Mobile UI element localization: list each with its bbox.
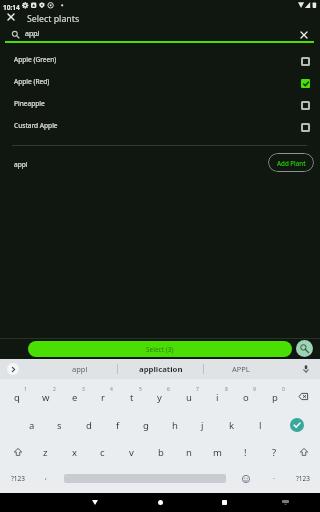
button[interactable]: Backspace xyxy=(288,383,318,410)
button[interactable]: More suggestions xyxy=(2,359,24,379)
button[interactable]: j xyxy=(188,411,217,438)
button[interactable]: Emoji xyxy=(231,465,260,492)
button[interactable]: r xyxy=(88,383,117,410)
staticText: 10:14 xyxy=(3,3,20,12)
button[interactable]: l xyxy=(246,411,275,438)
button[interactable]: Hide keyboard xyxy=(275,493,295,512)
button[interactable]: appl xyxy=(34,359,126,379)
staticText: Apple (Red) xyxy=(14,77,50,86)
button[interactable]: i xyxy=(203,383,232,410)
staticText: y xyxy=(157,391,162,404)
staticText: . xyxy=(273,472,275,482)
staticText: Pineapple xyxy=(14,99,45,108)
button[interactable]: Apple (Red) xyxy=(0,70,320,92)
button[interactable]: u xyxy=(174,383,203,410)
button[interactable]: Select (3) xyxy=(28,341,292,357)
button[interactable]: Shift xyxy=(3,438,32,465)
button[interactable]: t xyxy=(117,383,146,410)
staticText: Apple (Green) xyxy=(14,55,57,64)
staticText: g xyxy=(143,419,149,432)
button[interactable]: f xyxy=(103,411,132,438)
button[interactable]: APPL xyxy=(206,359,275,379)
staticText: 9 xyxy=(253,386,256,393)
button[interactable]: c xyxy=(88,438,117,465)
button[interactable]: Shift xyxy=(289,438,318,465)
button[interactable]: k xyxy=(217,411,246,438)
staticText: o xyxy=(243,391,249,404)
button[interactable]: w xyxy=(31,383,60,410)
button[interactable]: Apple (Green) xyxy=(0,48,320,70)
staticText: 5 xyxy=(139,386,142,393)
staticText: Custard Apple xyxy=(14,121,58,130)
staticText: f xyxy=(116,419,120,432)
button[interactable]: Enter xyxy=(282,411,312,438)
staticText: d xyxy=(86,419,92,432)
staticText: 7 xyxy=(196,386,199,393)
staticText: a xyxy=(29,419,35,432)
button[interactable]: ! xyxy=(231,438,260,465)
button[interactable]: Pineapple xyxy=(0,92,320,114)
staticText: k xyxy=(229,419,235,432)
staticText: t xyxy=(130,391,134,404)
staticText: w xyxy=(42,391,50,404)
staticText: ? xyxy=(272,446,277,459)
staticText: Select (3) xyxy=(146,345,174,354)
button[interactable]: Close xyxy=(3,9,19,25)
button[interactable]: Recent apps xyxy=(204,493,244,512)
staticText: i xyxy=(216,391,219,404)
staticText: v xyxy=(129,446,134,459)
button[interactable]: Home xyxy=(140,493,180,512)
staticText: Add Plant xyxy=(277,159,306,167)
staticText: 6 xyxy=(167,386,170,393)
staticText: ?123 xyxy=(11,474,25,483)
staticText: 4 xyxy=(110,386,113,393)
staticText: , xyxy=(45,472,47,482)
staticText: x xyxy=(72,446,78,459)
button[interactable]: Space xyxy=(60,465,230,492)
button[interactable]: d xyxy=(74,411,103,438)
staticText: h xyxy=(172,419,178,432)
staticText: s xyxy=(57,419,62,432)
button[interactable]: p xyxy=(260,383,289,410)
staticText: l xyxy=(259,419,262,432)
staticText: q xyxy=(14,391,20,404)
staticText: p xyxy=(272,391,278,404)
button[interactable]: b xyxy=(146,438,175,465)
staticText: c xyxy=(100,446,105,459)
staticText: appl xyxy=(14,160,28,169)
button[interactable]: a xyxy=(17,411,46,438)
button[interactable]: h xyxy=(160,411,189,438)
button[interactable]: g xyxy=(131,411,160,438)
staticText: ?123 xyxy=(296,474,310,483)
button[interactable]: q xyxy=(2,383,31,410)
button[interactable]: ?123 xyxy=(3,465,32,492)
button[interactable]: Custard Apple xyxy=(0,114,320,136)
button[interactable]: Clear search xyxy=(297,28,311,42)
button[interactable]: application xyxy=(121,359,200,379)
button[interactable]: e xyxy=(60,383,89,410)
button[interactable]: n xyxy=(174,438,203,465)
button[interactable]: Add Plant xyxy=(268,153,314,172)
button[interactable]: m xyxy=(203,438,232,465)
button[interactable]: Search xyxy=(296,340,313,357)
staticText: 1 xyxy=(24,386,27,393)
staticText: 2 xyxy=(53,386,56,393)
staticText: application xyxy=(139,364,183,375)
button[interactable]: z xyxy=(31,438,60,465)
button[interactable]: s xyxy=(45,411,74,438)
button[interactable]: v xyxy=(117,438,146,465)
staticText: j xyxy=(201,419,204,432)
button[interactable]: y xyxy=(145,383,174,410)
button[interactable]: ? xyxy=(260,438,289,465)
staticText: appl xyxy=(25,29,40,39)
button[interactable]: x xyxy=(60,438,89,465)
staticText: appl xyxy=(72,364,88,374)
button[interactable]: Voice input xyxy=(296,359,316,379)
button[interactable]: appl xyxy=(0,28,320,44)
button[interactable]: Comma xyxy=(31,465,60,492)
button[interactable]: Back xyxy=(75,493,115,512)
button[interactable]: ?123 xyxy=(288,465,317,492)
staticText: ! xyxy=(244,446,247,459)
button[interactable]: o xyxy=(231,383,260,410)
